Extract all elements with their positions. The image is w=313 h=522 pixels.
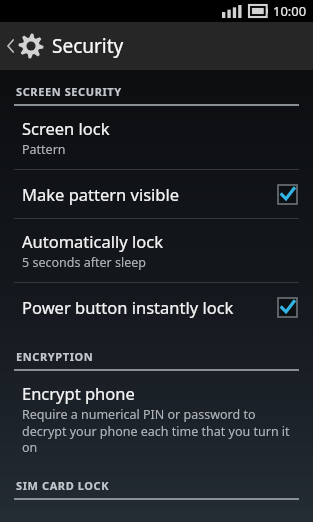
staticText: Power button instantly lock xyxy=(22,296,270,318)
button[interactable]: Screen lock xyxy=(0,106,313,169)
staticText: Automatically lock xyxy=(22,230,163,252)
staticText: Make pattern visible xyxy=(22,183,270,205)
button[interactable]: Automatically lock xyxy=(0,219,313,282)
staticText: SCREEN SECURITY xyxy=(16,84,122,99)
button[interactable]: Make pattern visible xyxy=(0,170,313,218)
staticText: 10:00 xyxy=(273,2,307,20)
staticText: 5 seconds after sleep xyxy=(22,254,146,271)
staticText: Encrypt phone xyxy=(22,382,135,404)
staticText: Screen lock xyxy=(22,117,110,139)
staticText: Security xyxy=(52,33,124,59)
button[interactable]: Encrypt phone xyxy=(0,371,313,466)
staticText: SIM CARD LOCK xyxy=(16,478,110,493)
staticText: Require a numerical PIN or password to d… xyxy=(22,406,299,455)
button[interactable]: Power button instantly lock xyxy=(0,283,313,331)
staticText: Pattern xyxy=(22,141,66,158)
staticText: ENCRYPTION xyxy=(16,349,94,364)
button[interactable]: Back to Settings xyxy=(0,22,313,70)
